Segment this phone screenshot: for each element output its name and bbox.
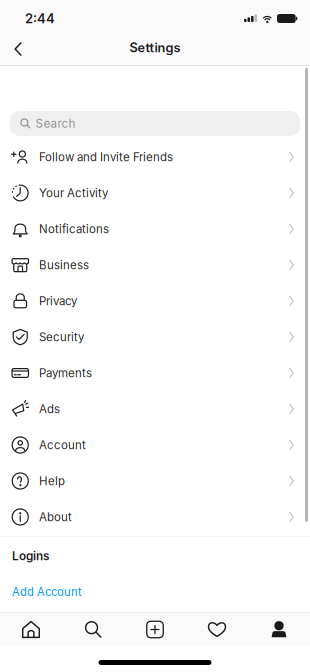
staticText: Privacy [39,294,77,308]
button[interactable]: Profile [248,613,310,646]
staticText: Add Account [12,585,82,599]
button[interactable]: Security [0,319,310,355]
staticText: Settings [129,40,180,55]
button[interactable]: About [0,499,310,535]
staticText: Your Activity [39,186,108,200]
button[interactable]: New post [124,613,186,646]
button[interactable]: Privacy [0,283,310,319]
staticText: Security [39,330,84,344]
button[interactable]: Search [0,66,310,136]
staticText: Business [39,258,89,272]
staticText: Help [39,474,65,488]
button[interactable]: Search [62,613,124,646]
button[interactable]: Add Account [12,563,82,599]
staticText: Search [35,116,75,131]
button[interactable]: Help [0,463,310,499]
button[interactable]: Account [0,427,310,463]
staticText: Ads [39,402,60,416]
button[interactable]: Follow and Invite Friends [0,139,310,175]
button[interactable]: Business [0,247,310,283]
staticText: Payments [39,366,92,380]
button[interactable]: Notifications [0,211,310,247]
staticText: 2:44 [25,11,55,26]
button[interactable]: Payments [0,355,310,391]
staticText: Logins [12,549,49,563]
staticText: Notifications [39,222,109,236]
button[interactable]: Ads [0,391,310,427]
button[interactable]: Back [4,32,32,62]
staticText: Follow and Invite Friends [39,150,173,164]
staticText: Account [39,438,86,452]
button[interactable]: Activity [186,613,248,646]
button[interactable]: Home [0,613,62,646]
staticText: About [39,510,72,524]
button[interactable]: Your Activity [0,175,310,211]
